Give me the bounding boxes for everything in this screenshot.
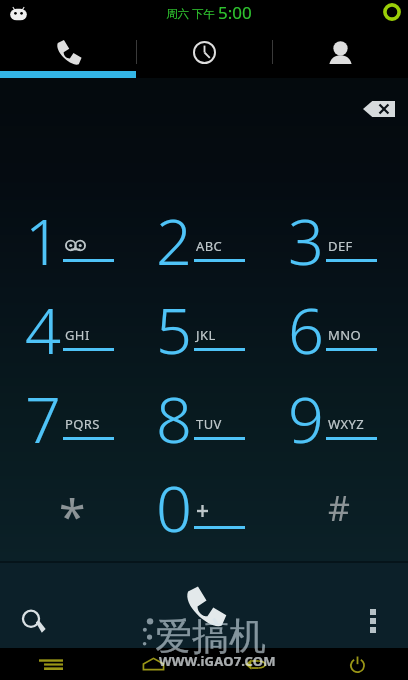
staticText: 3 bbox=[288, 198, 324, 279]
button[interactable]: 5 bbox=[137, 284, 269, 373]
button[interactable]: Search bbox=[13, 601, 55, 643]
staticText: 1 bbox=[25, 198, 61, 279]
button[interactable]: 6 bbox=[269, 284, 401, 373]
staticText: 8 bbox=[156, 376, 192, 457]
button[interactable]: Dialer bbox=[0, 22, 136, 71]
button[interactable]: 0 bbox=[137, 462, 269, 551]
staticText: * bbox=[59, 483, 86, 548]
staticText: 周六 下午 bbox=[166, 6, 215, 22]
button[interactable]: Home bbox=[102, 648, 204, 680]
button[interactable]: Menu bbox=[0, 648, 102, 680]
staticText: 5:00 bbox=[218, 1, 252, 23]
button[interactable]: * bbox=[6, 462, 137, 551]
staticText: 5 bbox=[156, 287, 192, 368]
staticText: 爱搞机 bbox=[155, 613, 266, 660]
staticText: TUV bbox=[196, 415, 222, 433]
button[interactable]: # bbox=[269, 462, 401, 551]
staticText: DEF bbox=[328, 237, 353, 255]
button[interactable]: More options bbox=[352, 600, 394, 642]
staticText: PQRS bbox=[65, 415, 100, 433]
button[interactable]: Contacts bbox=[272, 22, 408, 71]
button[interactable]: 3 bbox=[269, 195, 401, 284]
staticText: 6 bbox=[288, 287, 324, 368]
button[interactable]: 2 bbox=[137, 195, 269, 284]
staticText: 0 bbox=[156, 465, 192, 546]
staticText: ABC bbox=[196, 237, 223, 255]
button[interactable]: 4 bbox=[6, 284, 137, 373]
staticText: # bbox=[328, 485, 350, 531]
button[interactable]: 1 bbox=[6, 195, 137, 284]
staticText: 7 bbox=[25, 376, 61, 457]
staticText: WWW.iGAO7.COM bbox=[159, 652, 276, 670]
button[interactable]: Power bbox=[306, 648, 408, 680]
button[interactable]: 7 bbox=[6, 373, 137, 462]
button[interactable]: Back bbox=[204, 648, 306, 680]
staticText: MNO bbox=[328, 326, 362, 344]
staticText: 4 bbox=[25, 287, 61, 368]
staticText: 2 bbox=[156, 198, 192, 279]
button[interactable]: Delete bbox=[353, 91, 405, 127]
button[interactable]: Call bbox=[176, 579, 232, 635]
staticText: JKL bbox=[196, 326, 216, 344]
staticText: WXYZ bbox=[328, 415, 365, 433]
button[interactable]: 8 bbox=[137, 373, 269, 462]
staticText: GHI bbox=[65, 326, 90, 344]
button[interactable]: Recents bbox=[136, 22, 272, 71]
staticText: 9 bbox=[288, 376, 324, 457]
button[interactable]: 9 bbox=[269, 373, 401, 462]
